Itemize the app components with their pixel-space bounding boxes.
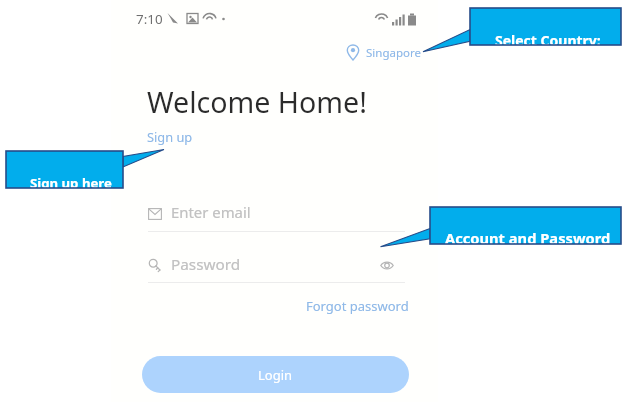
button[interactable]: Select Country: xyxy=(470,8,621,45)
staticText: 7:10 xyxy=(136,10,163,28)
staticText: Select Country: xyxy=(495,31,601,45)
staticText: Login xyxy=(258,366,293,384)
staticText: Sign up here xyxy=(30,174,112,188)
staticText: Account and Password xyxy=(445,228,611,244)
button[interactable]: Forgot password xyxy=(306,297,409,315)
staticText: Password xyxy=(171,254,241,275)
button[interactable]: Show password xyxy=(380,259,395,272)
staticText: Sign up xyxy=(147,128,193,145)
button[interactable]: Singapore xyxy=(346,44,421,61)
staticText: Welcome Home! xyxy=(147,82,367,121)
staticText: Enter email xyxy=(171,202,251,222)
button[interactable]: Sign up xyxy=(147,128,193,145)
staticText: Singapore xyxy=(366,45,421,61)
button[interactable]: Sign up here xyxy=(6,151,123,188)
staticText: Forgot password xyxy=(306,297,409,315)
button[interactable]: Account and Password xyxy=(430,207,621,244)
button[interactable]: Login xyxy=(142,356,409,393)
